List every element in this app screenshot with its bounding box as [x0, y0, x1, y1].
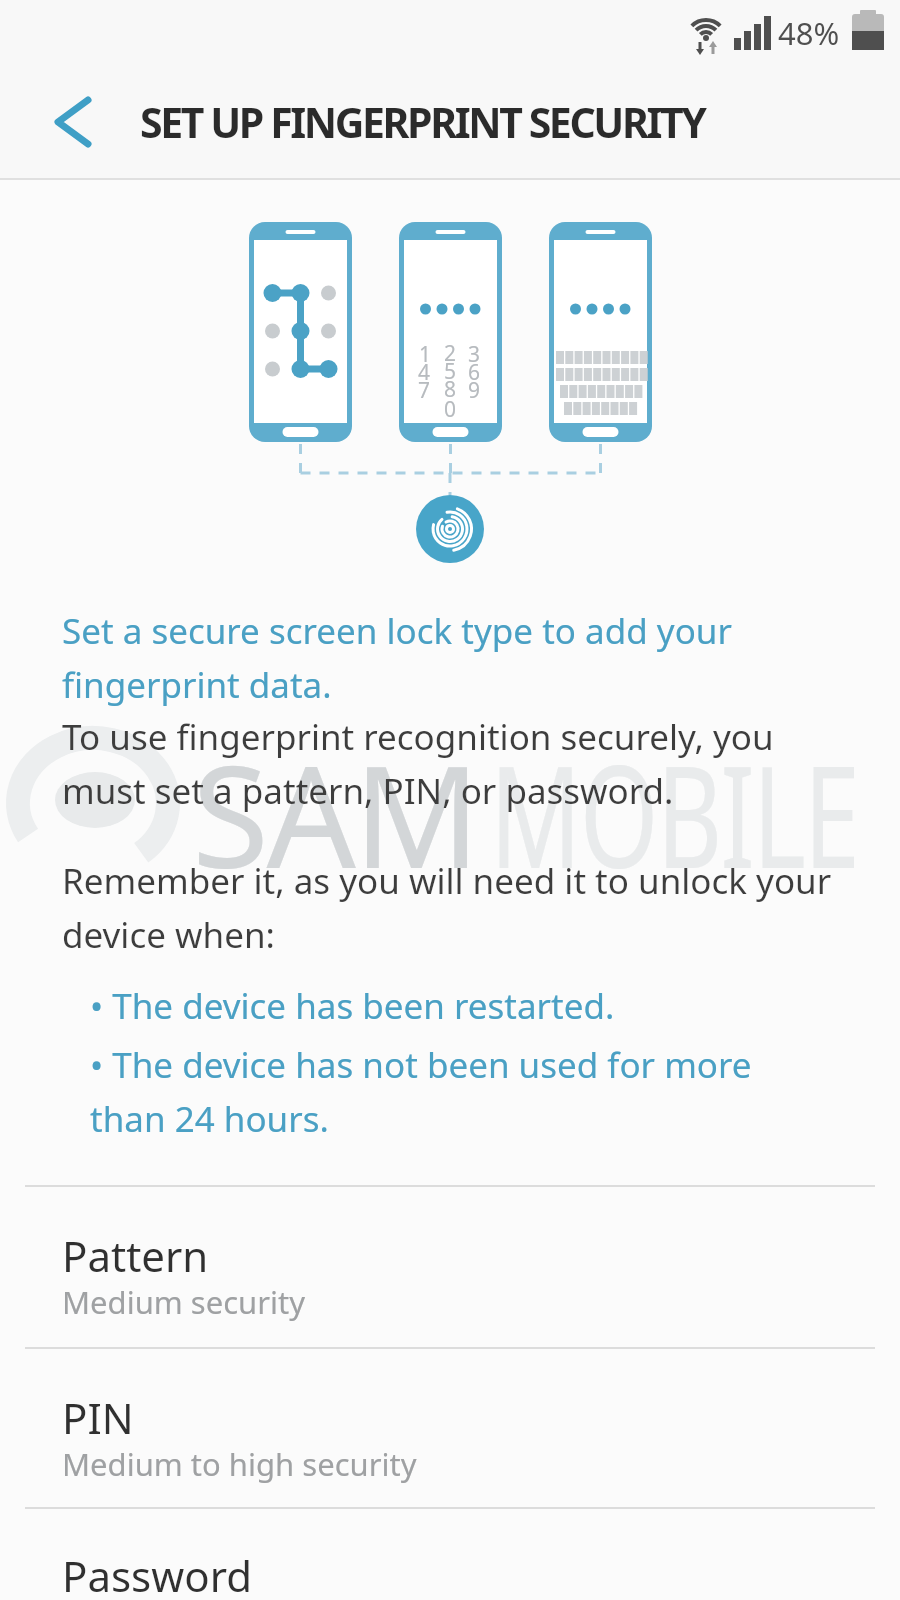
staticText: 7 — [418, 376, 431, 405]
staticText: 48% — [778, 12, 840, 54]
staticText: MOBILE — [490, 718, 859, 909]
staticText: 1 — [419, 340, 432, 369]
button[interactable]: PIN — [0, 1349, 900, 1509]
staticText: • The device has been restarted. — [90, 982, 615, 1030]
button[interactable] — [40, 90, 104, 154]
staticText: Password — [62, 1547, 252, 1600]
button[interactable]: Password — [0, 1509, 900, 1600]
staticText: 5 — [444, 357, 457, 386]
staticText: 9 — [468, 376, 481, 405]
staticText: PIN — [62, 1389, 134, 1446]
staticText: Medium to high security — [62, 1443, 417, 1485]
staticText: 3 — [468, 340, 481, 369]
staticText: 8 — [444, 375, 457, 404]
staticText: • The device has not been used for more … — [90, 1041, 752, 1143]
staticText: To use fingerprint recognition securely,… — [62, 713, 774, 815]
staticText: SET UP FINGERPRINT SECURITY — [140, 94, 705, 150]
staticText: Set a secure screen lock type to add you… — [62, 607, 732, 709]
staticText: 4 — [418, 358, 431, 387]
staticText: SAM — [192, 718, 479, 909]
staticText: Remember it, as you will need it to unlo… — [62, 857, 832, 959]
staticText: Pattern — [62, 1227, 209, 1284]
staticText: Medium security — [62, 1281, 306, 1323]
staticText: 6 — [468, 358, 481, 387]
button[interactable]: Pattern — [0, 1187, 900, 1347]
staticText: 0 — [444, 395, 457, 424]
staticText: 2 — [444, 339, 457, 368]
